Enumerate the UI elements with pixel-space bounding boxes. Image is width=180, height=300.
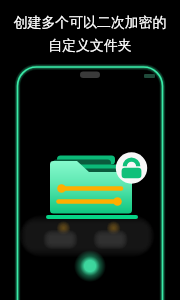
staticText: 自定义文件夹	[0, 37, 180, 55]
staticText: 创建多个可以二次加密的	[0, 14, 180, 32]
